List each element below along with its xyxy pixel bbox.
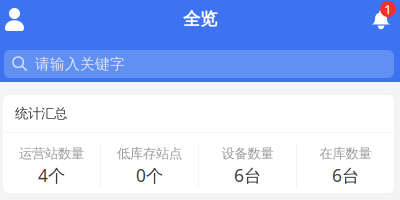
staticText: 设备数量 <box>221 145 273 162</box>
button[interactable]: 运营站数量 <box>3 145 100 187</box>
button[interactable]: 低库存站点 <box>101 145 198 187</box>
staticText: 全览 <box>183 8 217 30</box>
button[interactable]: 设备数量 <box>199 145 296 187</box>
staticText: 0个 <box>136 164 163 187</box>
button[interactable]: 请输入关键字 <box>4 50 394 78</box>
staticText: 6台 <box>332 164 359 187</box>
staticText: 4个 <box>38 164 65 187</box>
staticText: 请输入关键字 <box>35 55 125 73</box>
staticText: 运营站数量 <box>19 145 84 162</box>
staticText: 统计汇总 <box>15 105 67 122</box>
staticText: 6台 <box>234 164 261 187</box>
staticText: 低库存站点 <box>117 145 182 162</box>
button[interactable]: Profile <box>5 0 34 38</box>
button[interactable]: 在库数量 <box>297 145 394 187</box>
staticText: 1 <box>384 0 392 18</box>
button[interactable]: Notifications, 1 unread <box>366 0 396 38</box>
staticText: 在库数量 <box>319 145 371 162</box>
